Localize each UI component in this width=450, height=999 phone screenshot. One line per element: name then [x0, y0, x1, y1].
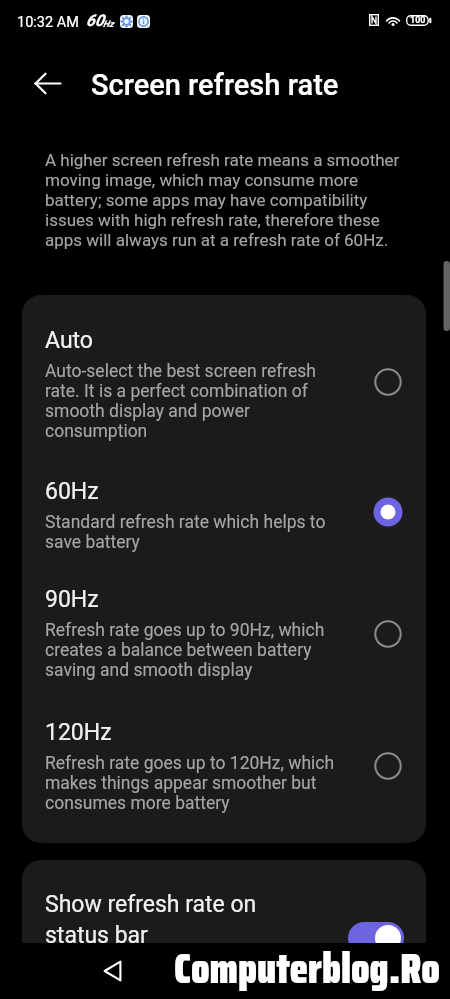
- button[interactable]: Back: [94, 953, 130, 989]
- staticText: 100: [410, 15, 426, 26]
- staticText: Refresh rate goes up to 90Hz, which crea…: [45, 620, 347, 680]
- staticText: Auto: [45, 327, 93, 354]
- staticText: Standard refresh rate which helps to sav…: [45, 512, 347, 552]
- staticText: 60: [86, 11, 104, 30]
- staticText: Show refresh rate on status bar: [45, 891, 277, 949]
- other: Info: [137, 15, 150, 28]
- staticText: 120Hz: [45, 719, 112, 746]
- button[interactable]: Show refresh rate on status bar: [22, 860, 426, 985]
- button[interactable]: 90Hz: [22, 554, 426, 687]
- other: Settings: [120, 15, 133, 28]
- staticText: Refresh rate goes up to 120Hz, which mak…: [45, 753, 347, 813]
- staticText: Auto-select the best screen refresh rate…: [45, 361, 347, 441]
- button[interactable]: Back: [24, 60, 70, 106]
- staticText: 60Hz: [45, 478, 99, 505]
- staticText: A higher screen refresh rate means a smo…: [45, 150, 407, 250]
- button[interactable]: Show refresh rate on status bar: [348, 922, 404, 954]
- button[interactable]: 120Hz: [22, 687, 426, 843]
- button[interactable]: Auto: [22, 295, 426, 446]
- staticText: 10:32 AM: [17, 14, 79, 31]
- staticText: 90Hz: [45, 586, 99, 613]
- staticText: Hz: [103, 19, 114, 30]
- staticText: Screen refresh rate: [91, 68, 339, 102]
- button[interactable]: 60Hz: [22, 446, 426, 554]
- staticText: Computerblog.Ro: [174, 935, 440, 991]
